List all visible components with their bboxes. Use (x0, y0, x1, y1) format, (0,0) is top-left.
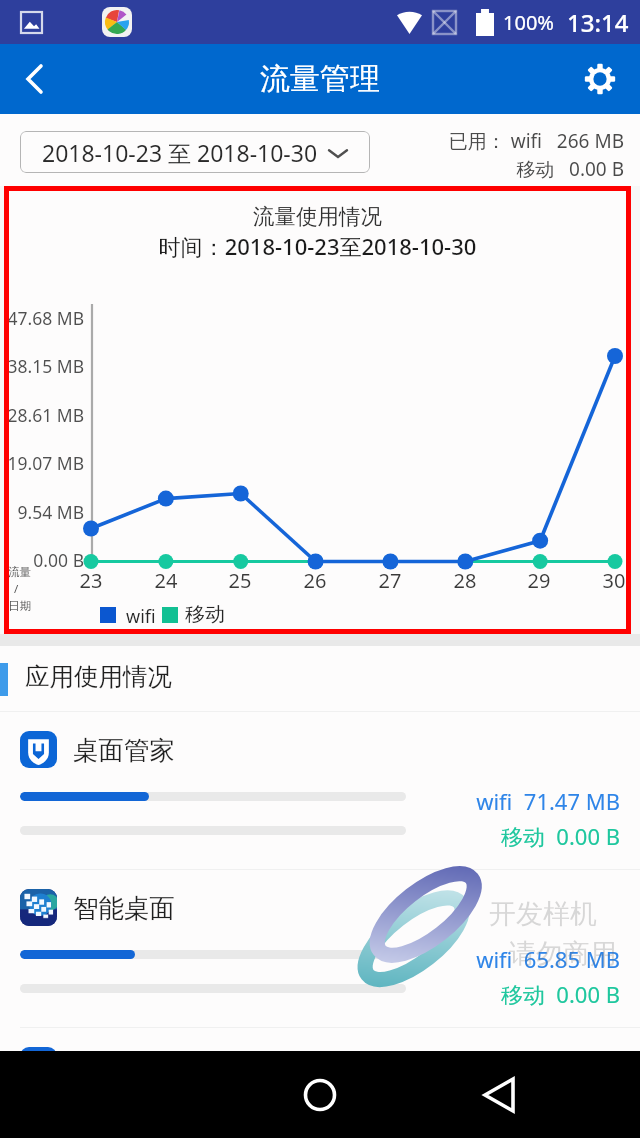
staticText: wifi (126, 604, 156, 629)
staticText: 移动 0.00 B (0, 156, 624, 182)
button[interactable]: Back (463, 1058, 537, 1132)
staticText: 桌面管家 (73, 734, 175, 766)
staticText: wifi 65.85 MB (0, 944, 620, 974)
staticText: 23 (66, 567, 116, 594)
button[interactable]: 桌面管家 (0, 712, 640, 870)
staticText: 26 (290, 567, 340, 594)
staticText: 流量 (8, 565, 31, 579)
staticText: 47.68 MB (5, 306, 84, 330)
staticText: 时间：2018-10-23至2018-10-30 (4, 231, 631, 261)
staticText: 38.15 MB (5, 354, 84, 378)
staticText: 2018-10-23 至 2018-10-30 (42, 137, 318, 168)
staticText: 开发样机 (489, 897, 597, 931)
staticText: 移动 0.00 B (0, 821, 620, 851)
staticText: / (14, 581, 19, 597)
staticText: 28 (440, 567, 490, 594)
staticText: 13:14 (567, 6, 629, 39)
staticText: 智能桌面 (73, 892, 175, 924)
staticText: 29 (514, 567, 564, 594)
staticText: 25 (215, 567, 265, 594)
staticText: 流量使用情况 (4, 203, 631, 230)
staticText: 9.54 MB (5, 500, 84, 524)
button[interactable]: Settings (572, 45, 640, 113)
staticText: 30 (589, 567, 639, 594)
staticText: 24 (141, 567, 191, 594)
staticText: 0.00 B (5, 548, 84, 572)
staticText: 日期 (8, 599, 31, 613)
staticText: wifi 71.47 MB (0, 786, 620, 816)
staticText: 应用使用情况 (25, 661, 172, 692)
staticText: 已用： wifi 266 MB (0, 128, 624, 154)
staticText: 流量管理 (260, 60, 380, 98)
staticText: 100% (503, 9, 554, 36)
button[interactable]: 2018-10-23 至 2018-10-30 (20, 131, 370, 173)
staticText: 19.07 MB (5, 451, 84, 475)
staticText: 移动 (185, 602, 225, 627)
staticText: 27 (365, 567, 415, 594)
staticText: 移动 0.00 B (0, 979, 620, 1009)
staticText: 请勿商用 (509, 937, 617, 971)
staticText: 28.61 MB (5, 403, 84, 427)
button[interactable]: 智能桌面 (0, 870, 640, 1028)
button[interactable]: Home (283, 1058, 357, 1132)
button[interactable]: Back (0, 45, 68, 113)
